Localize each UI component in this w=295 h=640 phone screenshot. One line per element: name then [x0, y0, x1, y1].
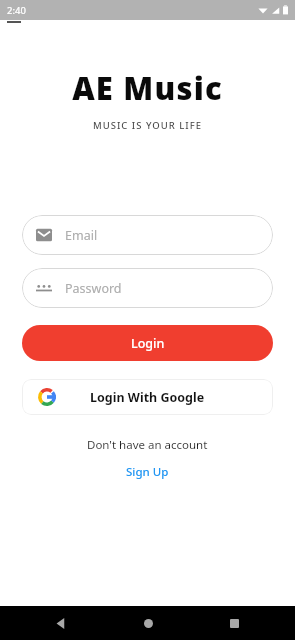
staticText: Login	[131, 335, 165, 352]
button[interactable]: Login	[22, 325, 273, 361]
button[interactable]: Back	[46, 608, 76, 638]
staticText: Password	[65, 280, 122, 297]
staticText: MUSIC IS YOUR LIFE	[93, 119, 202, 132]
button[interactable]: Email	[22, 215, 273, 255]
button[interactable]: Login With Google	[22, 379, 273, 415]
staticText: Don't have an account	[87, 437, 208, 453]
staticText: Email	[65, 227, 98, 244]
button[interactable]: Home	[133, 608, 163, 638]
button[interactable]: Password	[22, 268, 273, 308]
button[interactable]: Sign Up	[118, 462, 177, 482]
button[interactable]: Recent apps	[219, 608, 249, 638]
staticText: AE Music	[72, 67, 223, 109]
staticText: Sign Up	[126, 464, 169, 480]
staticText: Login With Google	[90, 389, 205, 406]
staticText: 2:40	[7, 4, 26, 17]
